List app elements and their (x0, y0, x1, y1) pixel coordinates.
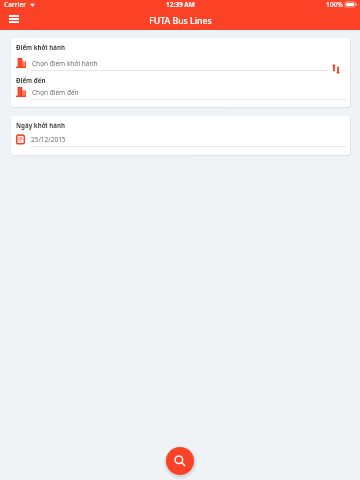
button[interactable]: Open navigation menu (4, 13, 23, 30)
staticText: Chọn điểm khởi hành (32, 59, 98, 68)
button[interactable]: Chọn điểm đến (11, 87, 350, 100)
staticText: Carrier (4, 0, 27, 9)
staticText: 25/12/2015 (31, 135, 66, 144)
staticText: Điểm khởi hành (16, 43, 66, 51)
button[interactable]: Chọn điểm khởi hành (11, 58, 350, 71)
staticText: Điểm đến (16, 76, 46, 84)
staticText: FUTA Bus Lines (149, 15, 212, 27)
button[interactable]: Swap departure and destination (329, 61, 342, 76)
button[interactable]: Search (166, 447, 194, 475)
staticText: Chọn điểm đến (32, 88, 79, 97)
staticText: Ngày khởi hành (16, 121, 66, 129)
staticText: 100% (326, 0, 343, 9)
button[interactable]: 25/12/2015 (11, 134, 350, 147)
staticText: 12:39 AM (166, 0, 195, 9)
